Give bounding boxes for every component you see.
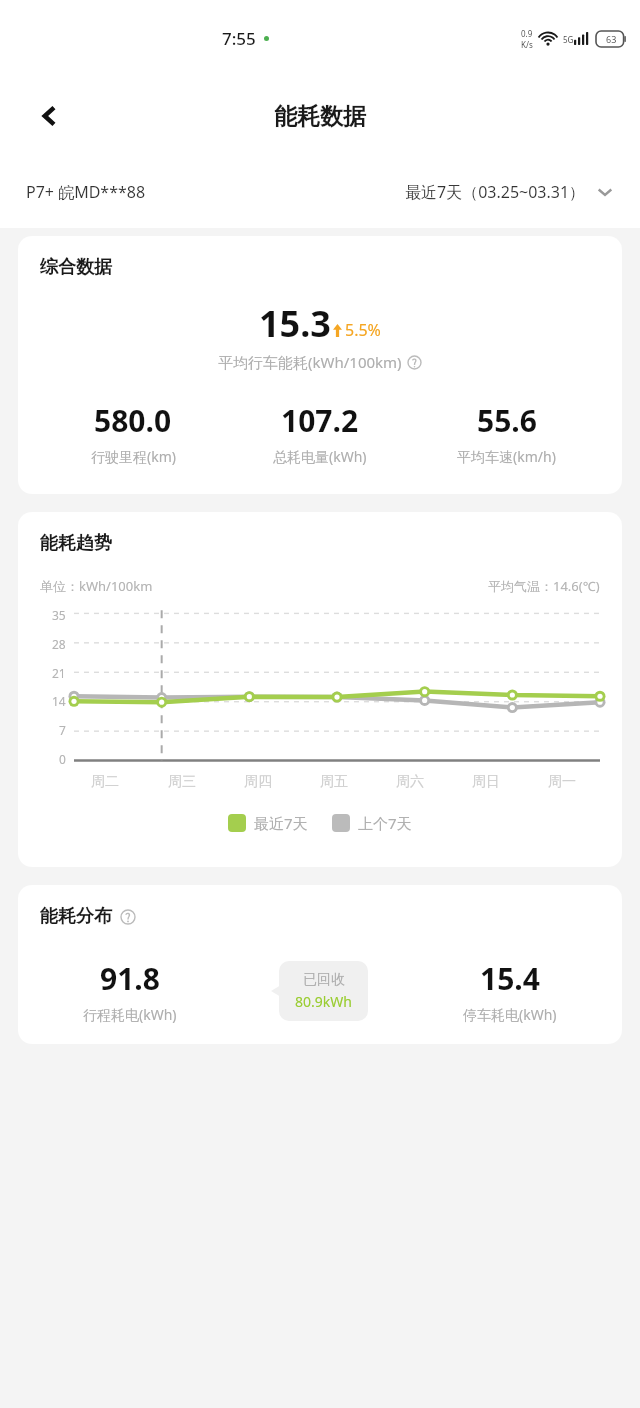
staticText: 总耗电量(kWh) bbox=[273, 447, 367, 466]
staticText: 7:55 bbox=[222, 27, 256, 50]
button[interactable]: 最近7天（03.25~03.31） bbox=[405, 181, 614, 203]
staticText: 行驶里程(km) bbox=[91, 447, 176, 466]
staticText: 周一 bbox=[548, 773, 576, 791]
staticText: 5.5% bbox=[345, 319, 381, 341]
staticText: 周二 bbox=[91, 773, 119, 791]
staticText: 已回收 bbox=[303, 971, 345, 989]
staticText: 能耗趋势 bbox=[40, 532, 112, 555]
staticText: P7+ 皖MD***88 bbox=[26, 181, 146, 203]
staticText: 周三 bbox=[168, 773, 196, 791]
staticText: 7 bbox=[59, 722, 66, 738]
staticText: 周五 bbox=[320, 773, 348, 791]
button[interactable]: 最近7天 bbox=[228, 813, 308, 833]
staticText: 5G bbox=[563, 34, 574, 45]
staticText: 35 bbox=[52, 607, 66, 623]
staticText: 0.9 bbox=[521, 28, 533, 39]
staticText: 15.3 bbox=[259, 299, 331, 348]
staticText: 行程耗电(kWh) bbox=[83, 1005, 177, 1024]
staticText: 平均车速(km/h) bbox=[457, 447, 556, 466]
staticText: 28 bbox=[52, 636, 66, 652]
staticText: 107.2 bbox=[281, 400, 359, 441]
staticText: 最近7天（03.25~03.31） bbox=[405, 181, 586, 203]
staticText: 综合数据 bbox=[40, 256, 112, 279]
staticText: 平均气温：14.6(℃) bbox=[488, 577, 600, 595]
staticText: 14 bbox=[52, 693, 66, 709]
staticText: 55.6 bbox=[477, 400, 537, 441]
staticText: 91.8 bbox=[100, 958, 160, 999]
staticText: 580.0 bbox=[94, 400, 172, 441]
staticText: 上个7天 bbox=[358, 813, 412, 833]
staticText: 停车耗电(kWh) bbox=[463, 1005, 557, 1024]
staticText: 能耗分布 bbox=[40, 905, 112, 928]
staticText: 21 bbox=[52, 665, 66, 681]
staticText: 单位：kWh/100km bbox=[40, 577, 153, 595]
staticText: 周四 bbox=[244, 773, 272, 791]
staticText: 平均行车能耗(kWh/100km) bbox=[218, 352, 402, 372]
staticText: 能耗数据 bbox=[274, 102, 366, 131]
staticText: K/s bbox=[521, 39, 533, 50]
button[interactable]: Back bbox=[26, 92, 74, 140]
staticText: 最近7天 bbox=[254, 813, 308, 833]
staticText: 周日 bbox=[472, 773, 500, 791]
staticText: 63 bbox=[606, 33, 617, 45]
staticText: 周六 bbox=[396, 773, 424, 791]
staticText: 0 bbox=[59, 751, 66, 767]
staticText: 15.4 bbox=[480, 958, 540, 999]
staticText: 80.9kWh bbox=[295, 992, 352, 1011]
button[interactable]: 上个7天 bbox=[332, 813, 412, 833]
